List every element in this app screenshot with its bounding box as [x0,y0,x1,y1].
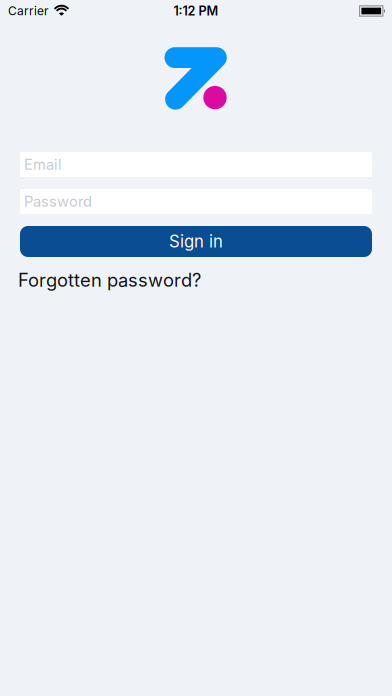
staticText: Carrier [8,4,49,18]
button[interactable]: Forgotten password? [0,269,392,291]
staticText: 1:12 PM [173,3,218,19]
staticText: Email [24,156,62,173]
staticText: Forgotten password? [18,269,201,291]
button[interactable]: Email [0,152,392,177]
button[interactable]: Sign in [0,226,392,257]
button[interactable]: Password [0,189,392,214]
staticText: Password [24,193,92,210]
staticText: Sign in [169,231,223,252]
